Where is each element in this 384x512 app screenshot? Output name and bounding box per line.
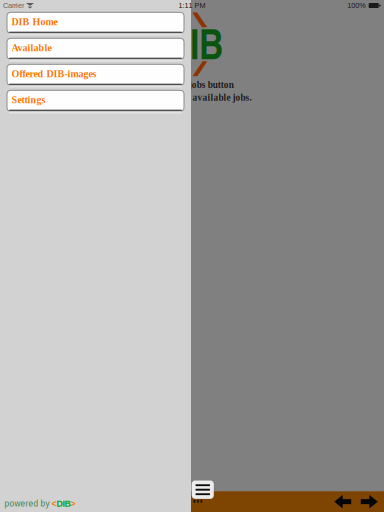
button[interactable]: Forward [356,491,382,512]
button[interactable]: Available [7,38,184,61]
staticText: Carrier [3,1,24,10]
staticText: DIB [166,14,223,72]
staticText: Available [11,42,51,54]
button[interactable]: DIB Home [7,12,184,35]
staticText: > [70,499,75,508]
staticText: < [51,499,56,508]
button[interactable]: Back [330,491,356,512]
staticText: 1:11 PM [178,1,205,10]
staticText: powered by [4,499,51,508]
button[interactable]: Settings [7,90,184,113]
staticText: DIB [56,499,70,508]
staticText: 100% [347,1,366,10]
staticText: to see available jobs. [169,92,252,103]
staticText: DIB Home [11,16,57,28]
staticText: Offered DIB-images [11,68,96,80]
staticText: Settings [11,94,45,106]
button[interactable]: Offered DIB-images [7,64,184,87]
staticText: Press the jobs button [151,80,234,90]
button[interactable]: Menu [192,480,214,499]
